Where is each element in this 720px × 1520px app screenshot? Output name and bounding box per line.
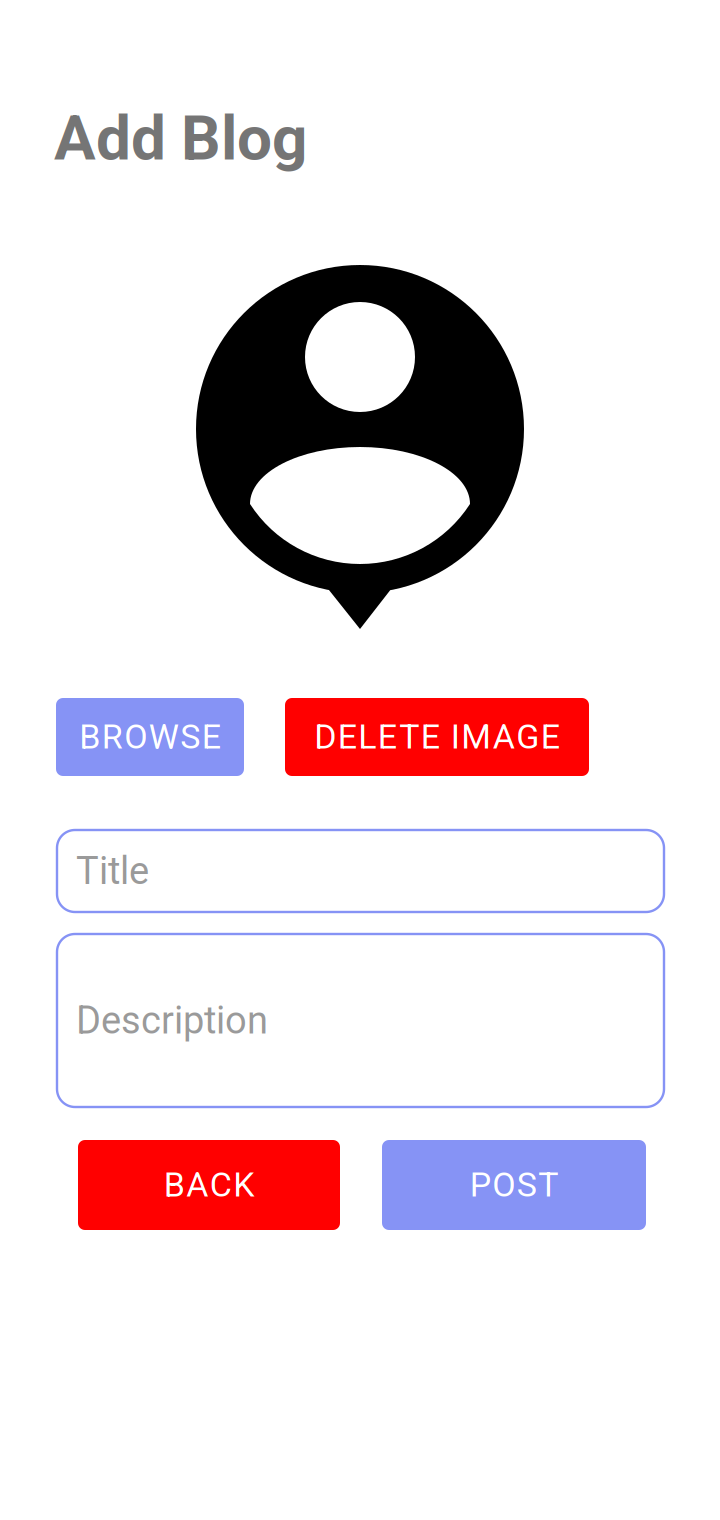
staticText: DELETE IMAGE	[314, 717, 560, 757]
button[interactable]: BROWSE	[56, 698, 244, 776]
staticText: BACK	[164, 1165, 254, 1205]
staticText: POST	[470, 1165, 558, 1205]
staticText: Description	[76, 998, 268, 1043]
button[interactable]: POST	[382, 1140, 646, 1230]
button[interactable]: BACK	[78, 1140, 340, 1230]
button[interactable]: Title	[57, 830, 664, 912]
staticText: BROWSE	[79, 717, 221, 757]
button[interactable]: Description	[57, 934, 664, 1107]
button[interactable]: DELETE IMAGE	[285, 698, 589, 776]
staticText: Add Blog	[54, 102, 307, 175]
staticText: Title	[76, 849, 149, 893]
